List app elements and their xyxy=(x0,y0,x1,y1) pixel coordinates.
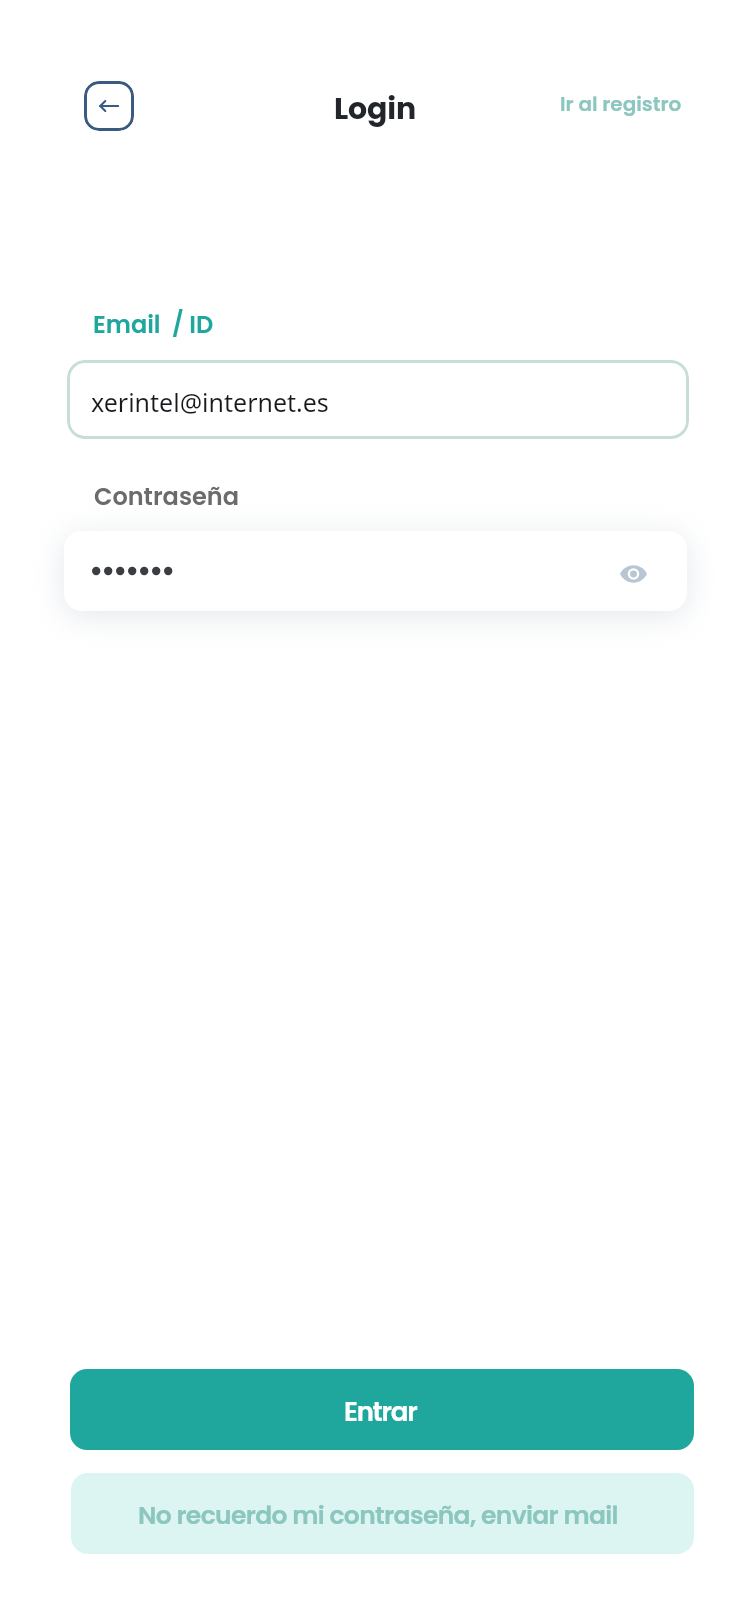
button[interactable]: Back xyxy=(84,81,134,131)
button[interactable]: Ir al registro xyxy=(544,78,698,130)
button[interactable]: Show password xyxy=(64,531,687,611)
staticText: Ir al registro xyxy=(560,90,682,118)
staticText: Email / ID xyxy=(93,308,214,342)
button[interactable]: Show password xyxy=(611,552,655,596)
staticText: No recuerdo mi contraseña, enviar mail xyxy=(138,1498,618,1533)
button[interactable]: Entrar xyxy=(70,1369,694,1450)
button[interactable]: xerintel@internet.es xyxy=(67,360,689,439)
staticText: Entrar xyxy=(344,1394,417,1430)
staticText: xerintel@internet.es xyxy=(91,385,329,419)
staticText: Login xyxy=(0,88,750,130)
button[interactable]: No recuerdo mi contraseña, enviar mail xyxy=(71,1473,694,1554)
staticText: Contraseña xyxy=(94,480,239,514)
